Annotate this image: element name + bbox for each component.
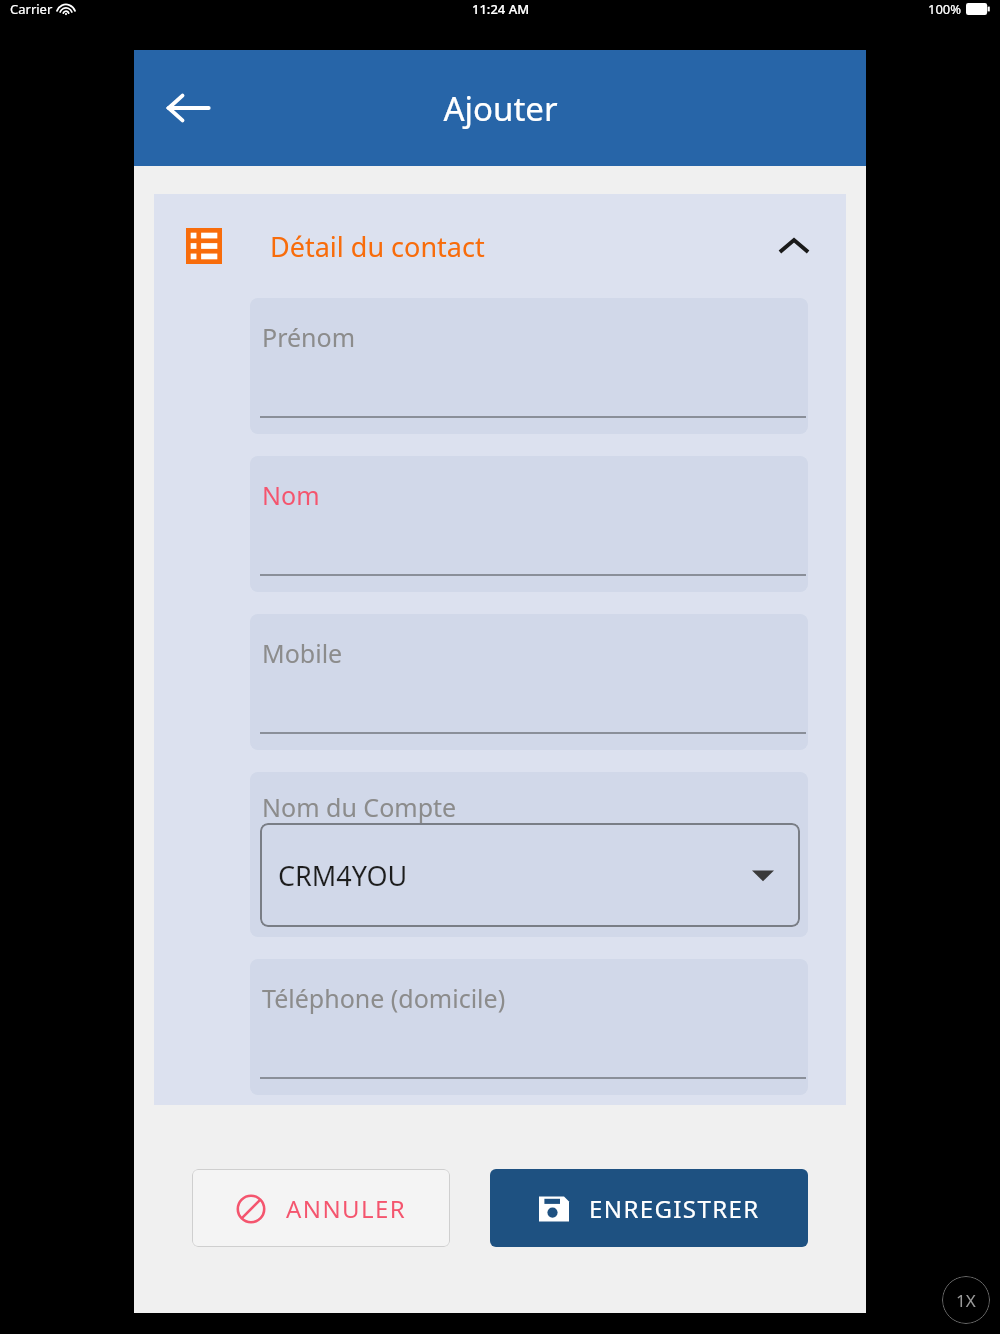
staticText: Prénom xyxy=(262,320,356,354)
button[interactable]: 1X xyxy=(942,1276,990,1324)
button[interactable]: CRM4YOU xyxy=(260,823,800,927)
button[interactable]: Détail du contact xyxy=(154,194,846,298)
button[interactable]: ANNULER xyxy=(192,1169,450,1247)
button[interactable]: Nom xyxy=(250,456,808,592)
button[interactable]: ENREGISTRER xyxy=(490,1169,808,1247)
button[interactable]: Prénom xyxy=(250,298,808,434)
staticText: Téléphone (domicile) xyxy=(262,981,506,1015)
staticText: Nom du Compte xyxy=(262,790,457,824)
staticText: Nom xyxy=(262,478,320,512)
staticText: CRM4YOU xyxy=(278,857,408,894)
button[interactable]: Mobile xyxy=(250,614,808,750)
button[interactable]: Collapse xyxy=(772,224,816,268)
staticText: 1X xyxy=(956,1289,976,1312)
staticText: Carrier xyxy=(10,0,53,18)
button[interactable]: Téléphone (domicile) xyxy=(250,959,808,1095)
staticText: Ajouter xyxy=(443,86,558,131)
staticText: Mobile xyxy=(262,636,343,670)
staticText: Détail du contact xyxy=(270,228,485,265)
staticText: ANNULER xyxy=(286,1192,407,1225)
staticText: 100% xyxy=(928,0,962,18)
button[interactable]: Back xyxy=(156,76,220,140)
staticText: 11:24 AM xyxy=(472,0,530,18)
staticText: ENREGISTRER xyxy=(589,1192,760,1225)
